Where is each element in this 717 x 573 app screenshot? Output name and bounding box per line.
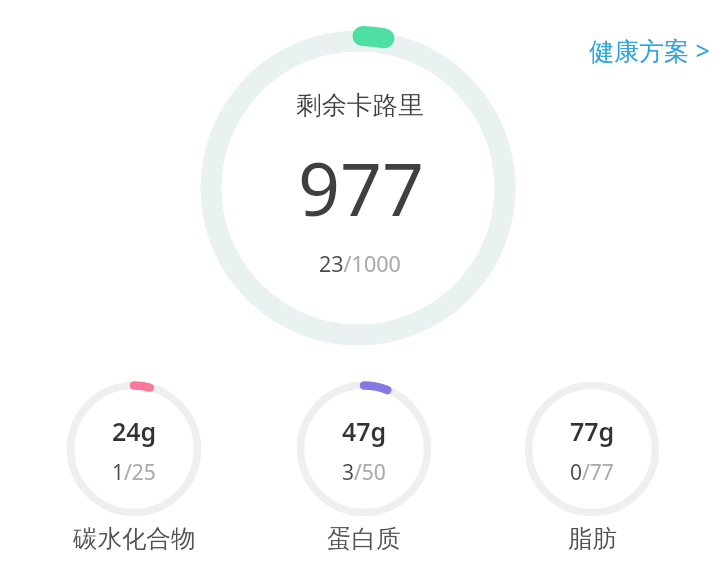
staticText: 77g	[570, 414, 615, 448]
staticText: 47g	[342, 414, 387, 448]
staticText: 0/77	[570, 458, 614, 487]
staticText: 蛋白质	[327, 523, 401, 554]
button[interactable]: 健康方案 >	[589, 33, 710, 67]
staticText: 健康方案 >	[589, 33, 710, 67]
staticText: 碳水化合物	[73, 523, 196, 554]
staticText: 977	[298, 137, 425, 237]
staticText: 剩余卡路里	[296, 89, 424, 121]
staticText: 23/1000	[319, 249, 401, 278]
staticText: 24g	[112, 414, 157, 448]
staticText: 脂肪	[568, 523, 617, 554]
staticText: 3/50	[342, 458, 386, 487]
staticText: 1/25	[112, 458, 156, 487]
